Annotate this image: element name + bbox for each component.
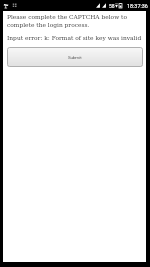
staticText: 58	[109, 3, 115, 9]
staticText: 18:37:36	[127, 3, 148, 9]
staticText: Submit	[68, 55, 82, 60]
staticText: Input error: k: Format of site key was i…	[7, 35, 142, 42]
button[interactable]: Submit	[7, 47, 143, 67]
staticText: Please complete the CAPTCHA below to com…	[7, 14, 143, 28]
